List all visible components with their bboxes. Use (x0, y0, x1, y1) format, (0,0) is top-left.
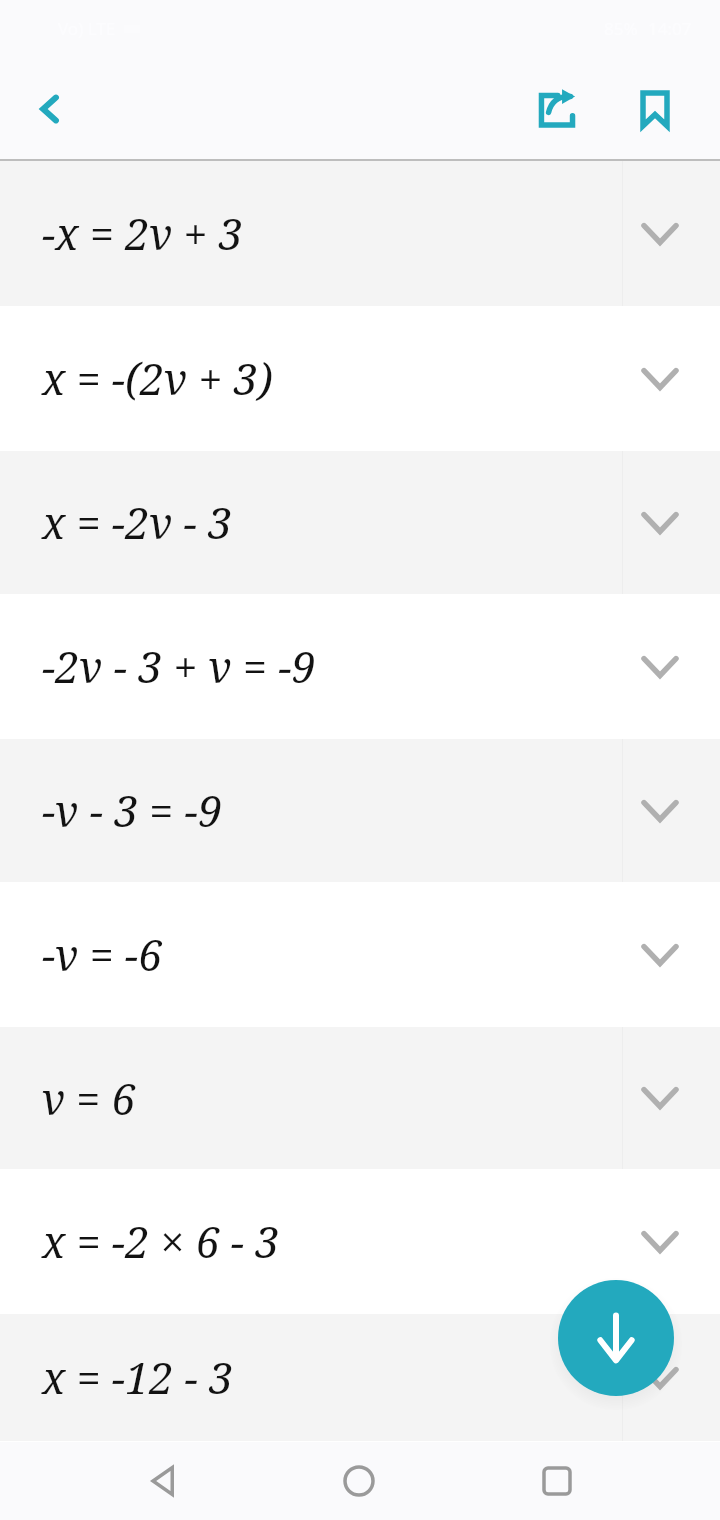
other: Expand step (640, 935, 680, 975)
button[interactable]: Home (324, 1446, 394, 1516)
other: Expand step (640, 647, 680, 687)
button[interactable]: x = −2 × 6 − 3 (0, 1169, 720, 1314)
other: Expand step (640, 1222, 680, 1262)
staticText: x = −12 − 3 (42, 1348, 234, 1407)
button[interactable]: Back (127, 1446, 197, 1516)
other: Expand step (640, 1358, 680, 1398)
staticText: v = 6 (42, 1069, 136, 1128)
button[interactable]: −2v − 3 + v = −9 (0, 594, 720, 739)
button[interactable]: Share (522, 74, 592, 144)
button[interactable]: −x = 2v + 3 (0, 161, 720, 306)
staticText: x = −(2v + 3) (42, 349, 273, 408)
button[interactable]: v = 6 (0, 1027, 720, 1169)
other: Expand step (640, 214, 680, 254)
staticText: −v = −6 (42, 925, 163, 984)
button[interactable]: Scroll down (558, 1280, 674, 1396)
button[interactable]: Bookmark (620, 74, 690, 144)
button[interactable]: −v = −6 (0, 882, 720, 1027)
other: Expand step (640, 1078, 680, 1118)
button[interactable]: x = −2v − 3 (0, 451, 720, 594)
staticText: −2v − 3 + v = −9 (42, 637, 316, 696)
button[interactable]: x = −12 − 3 (0, 1314, 720, 1441)
other: Expand step (640, 359, 680, 399)
button[interactable]: Back (18, 77, 82, 141)
other: Expand step (640, 503, 680, 543)
staticText: x = −2v − 3 (42, 493, 233, 552)
button[interactable]: x = −(2v + 3) (0, 306, 720, 451)
button[interactable]: Recents (522, 1446, 592, 1516)
staticText: −x = 2v + 3 (42, 204, 243, 263)
other: Expand step (640, 791, 680, 831)
staticText: x = −2 × 6 − 3 (42, 1212, 280, 1271)
button[interactable]: −v − 3 = −9 (0, 739, 720, 882)
staticText: −v − 3 = −9 (42, 781, 222, 840)
